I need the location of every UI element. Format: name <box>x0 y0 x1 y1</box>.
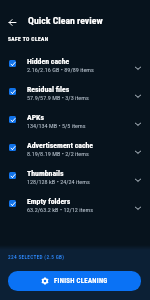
button[interactable]: Expand <box>130 144 146 160</box>
staticText: Residual files <box>27 85 70 94</box>
staticText: Empty folders <box>27 197 71 206</box>
button[interactable]: APKs <box>0 106 150 134</box>
staticText: Quick Clean review <box>28 15 103 26</box>
staticText: SAFE TO CLEAN <box>8 36 49 42</box>
button[interactable]: FINISH CLEANING <box>8 271 141 291</box>
staticText: FINISH CLEANING <box>54 277 108 285</box>
staticText: 8.19/8.19 MB • 2/2 items <box>27 150 89 157</box>
button[interactable]: Expand <box>130 60 146 76</box>
button[interactable]: Expand <box>130 88 146 104</box>
staticText: 128/128 kB • 24/24 items <box>27 178 90 185</box>
staticText: 134/134 MB • 5/5 items <box>27 122 86 129</box>
button[interactable]: Expand <box>130 172 146 188</box>
button[interactable]: Hidden cache <box>0 50 150 78</box>
staticText: Advertisement cache <box>27 141 94 150</box>
staticText: 2.16/2.16 GB • 89/89 items <box>27 66 94 73</box>
staticText: 57.9/57.9 MB • 3/3 items <box>27 94 89 101</box>
button[interactable]: Advertisement cache <box>0 134 150 162</box>
staticText: Thumbnails <box>27 169 64 178</box>
button[interactable]: Expand <box>130 116 146 132</box>
staticText: 63.2/63.2 kB • 12/12 items <box>27 206 93 213</box>
button[interactable]: Expand <box>130 200 146 216</box>
staticText: Hidden cache <box>27 57 70 66</box>
button[interactable]: Empty folders <box>0 190 150 218</box>
button[interactable]: Residual files <box>0 78 150 106</box>
staticText: 224 SELECTED (2.5 GB) <box>8 254 65 260</box>
button[interactable]: Back <box>4 14 21 31</box>
staticText: APKs <box>27 113 44 122</box>
button[interactable]: Thumbnails <box>0 162 150 190</box>
